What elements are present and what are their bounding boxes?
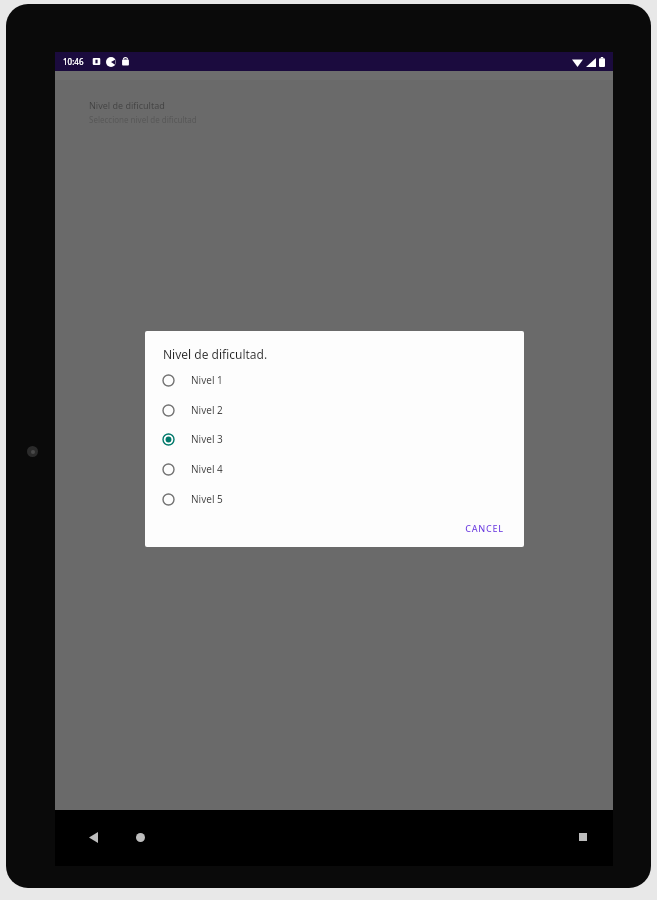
button[interactable]: Recent apps bbox=[567, 821, 599, 853]
staticText: Nivel 4 bbox=[191, 462, 223, 476]
button[interactable]: Nivel 1 bbox=[151, 366, 301, 394]
button[interactable]: Back bbox=[77, 821, 109, 853]
staticText: Nivel 1 bbox=[191, 373, 223, 387]
staticText: 10:46 bbox=[63, 56, 84, 67]
staticText: Nivel 5 bbox=[191, 492, 223, 506]
staticText: CANCEL bbox=[465, 522, 504, 534]
button[interactable]: Nivel 4 bbox=[151, 455, 301, 483]
staticText: Nivel de dificultad bbox=[89, 99, 165, 111]
button[interactable]: Nivel 5 bbox=[151, 485, 301, 513]
button[interactable]: Home bbox=[124, 821, 156, 853]
button[interactable]: CANCEL bbox=[455, 517, 513, 539]
button[interactable]: Nivel 2 bbox=[151, 396, 301, 424]
button[interactable]: Nivel 3 bbox=[151, 425, 301, 453]
staticText: Seleccione nivel de dificultad bbox=[89, 114, 197, 125]
staticText: Nivel 2 bbox=[191, 403, 223, 417]
staticText: Nivel 3 bbox=[191, 432, 223, 446]
staticText: Nivel de dificultad. bbox=[163, 346, 268, 362]
